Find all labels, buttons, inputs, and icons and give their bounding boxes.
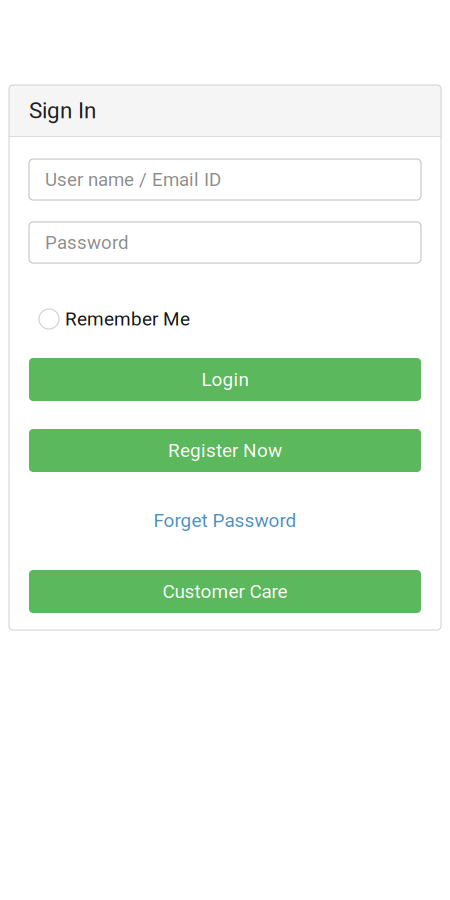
button[interactable]: Forget Password <box>29 510 421 531</box>
button[interactable]: Register Now <box>29 429 421 472</box>
button[interactable]: Password <box>29 222 421 263</box>
staticText: User name / Email ID <box>45 169 221 190</box>
staticText: Sign In <box>29 97 96 124</box>
staticText: Remember Me <box>65 308 190 330</box>
button[interactable]: Login <box>29 358 421 401</box>
button[interactable]: Customer Care <box>29 570 421 613</box>
staticText: Login <box>201 368 248 391</box>
staticText: Password <box>45 232 129 253</box>
button[interactable]: User name / Email ID <box>29 159 421 200</box>
staticText: Register Now <box>168 439 282 462</box>
button[interactable]: Remember Me <box>39 309 190 329</box>
staticText: Customer Care <box>162 580 287 603</box>
staticText: Forget Password <box>153 509 296 532</box>
